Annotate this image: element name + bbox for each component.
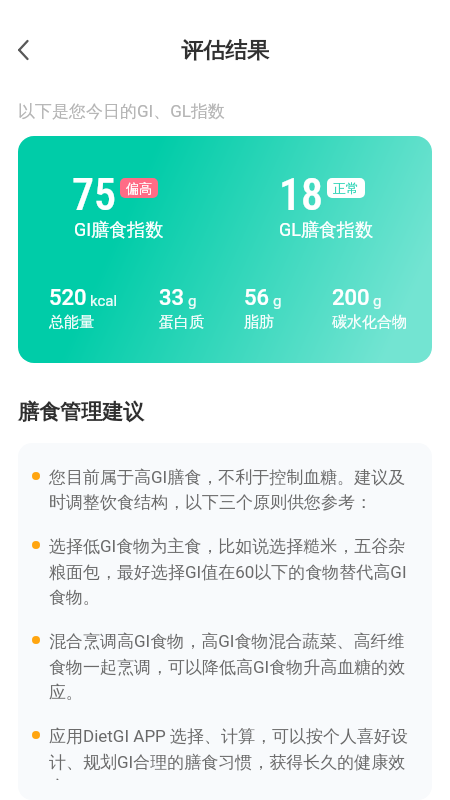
staticText: 您目前属于高GI膳食，不利于控制血糖。建议及时调整饮食结构，以下三个原则供您参考… bbox=[49, 463, 415, 514]
staticText: 18 bbox=[279, 169, 324, 221]
staticText: 蛋白质 bbox=[159, 313, 204, 332]
staticText: GI膳食指数 bbox=[74, 219, 164, 242]
staticText: 56 bbox=[244, 285, 270, 311]
staticText: 评估结果 bbox=[181, 37, 269, 65]
staticText: 正常 bbox=[333, 180, 359, 196]
staticText: 总能量 bbox=[49, 313, 94, 332]
staticText: 偏高 bbox=[126, 180, 152, 196]
staticText: 33 bbox=[159, 285, 185, 311]
button[interactable]: Back bbox=[6, 32, 42, 68]
staticText: GL膳食指数 bbox=[279, 219, 373, 242]
staticText: 520 bbox=[49, 285, 87, 311]
staticText: 75 bbox=[72, 169, 117, 221]
staticText: g bbox=[188, 292, 197, 310]
staticText: g bbox=[273, 292, 282, 310]
staticText: 200 bbox=[332, 285, 370, 311]
staticText: 混合烹调高GI食物，高GI食物混合蔬菜、高纤维食物一起烹调，可以降低高GI食物升… bbox=[49, 627, 415, 704]
staticText: 选择低GI食物为主食，比如说选择糙米，五谷杂粮面包，最好选择GI值在60以下的食… bbox=[49, 532, 415, 609]
staticText: 以下是您今日的GI、GL指数 bbox=[18, 101, 225, 122]
staticText: 膳食管理建议 bbox=[18, 399, 144, 425]
staticText: 碳水化合物 bbox=[332, 313, 407, 332]
staticText: g bbox=[373, 292, 382, 310]
staticText: kcal bbox=[90, 292, 118, 310]
staticText: 应用DietGI APP 选择、计算，可以按个人喜好设计、规划GI合理的膳食习惯… bbox=[49, 722, 415, 780]
staticText: 脂肪 bbox=[244, 313, 274, 332]
